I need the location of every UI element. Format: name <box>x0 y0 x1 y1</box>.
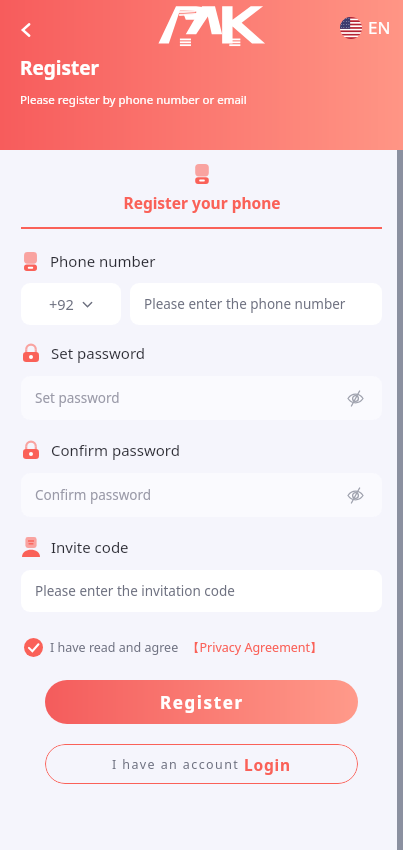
staticText: Login <box>244 754 291 775</box>
staticText: Please register by phone number or email <box>20 92 247 108</box>
staticText: +92 <box>49 294 74 314</box>
button[interactable]: Register <box>45 680 358 724</box>
button[interactable]: Please enter the phone number <box>130 283 382 325</box>
staticText: Register your phone <box>123 192 281 213</box>
staticText: Set password <box>35 389 120 407</box>
staticText: Phone number <box>50 251 156 271</box>
button[interactable]: I have an account <box>45 744 358 784</box>
button[interactable]: Set password <box>21 376 382 420</box>
button[interactable]: 【Privacy Agreement】 <box>187 639 323 656</box>
staticText: I have an account <box>112 756 244 773</box>
button[interactable]: EN <box>336 12 395 43</box>
button[interactable]: Toggle password visibility <box>342 385 368 411</box>
button[interactable]: Please enter the invitation code <box>21 570 382 612</box>
button[interactable]: Agree to privacy agreement <box>21 635 45 659</box>
staticText: Please enter the phone number <box>144 295 346 313</box>
staticText: Confirm password <box>51 440 180 460</box>
staticText: I have read and agree <box>50 639 179 656</box>
button[interactable]: Register your phone <box>0 192 403 213</box>
staticText: EN <box>368 16 391 39</box>
button[interactable]: Toggle password visibility <box>342 482 368 508</box>
staticText: Please enter the invitation code <box>35 582 235 600</box>
staticText: Register <box>20 55 100 81</box>
staticText: Confirm password <box>35 486 152 504</box>
button[interactable]: Confirm password <box>21 473 382 517</box>
staticText: Invite code <box>51 537 129 557</box>
button[interactable]: Back <box>6 10 46 50</box>
button[interactable]: +92 <box>21 283 121 325</box>
staticText: Set password <box>51 343 146 363</box>
staticText: Register <box>160 691 244 714</box>
staticText: 【Privacy Agreement】 <box>187 639 323 656</box>
